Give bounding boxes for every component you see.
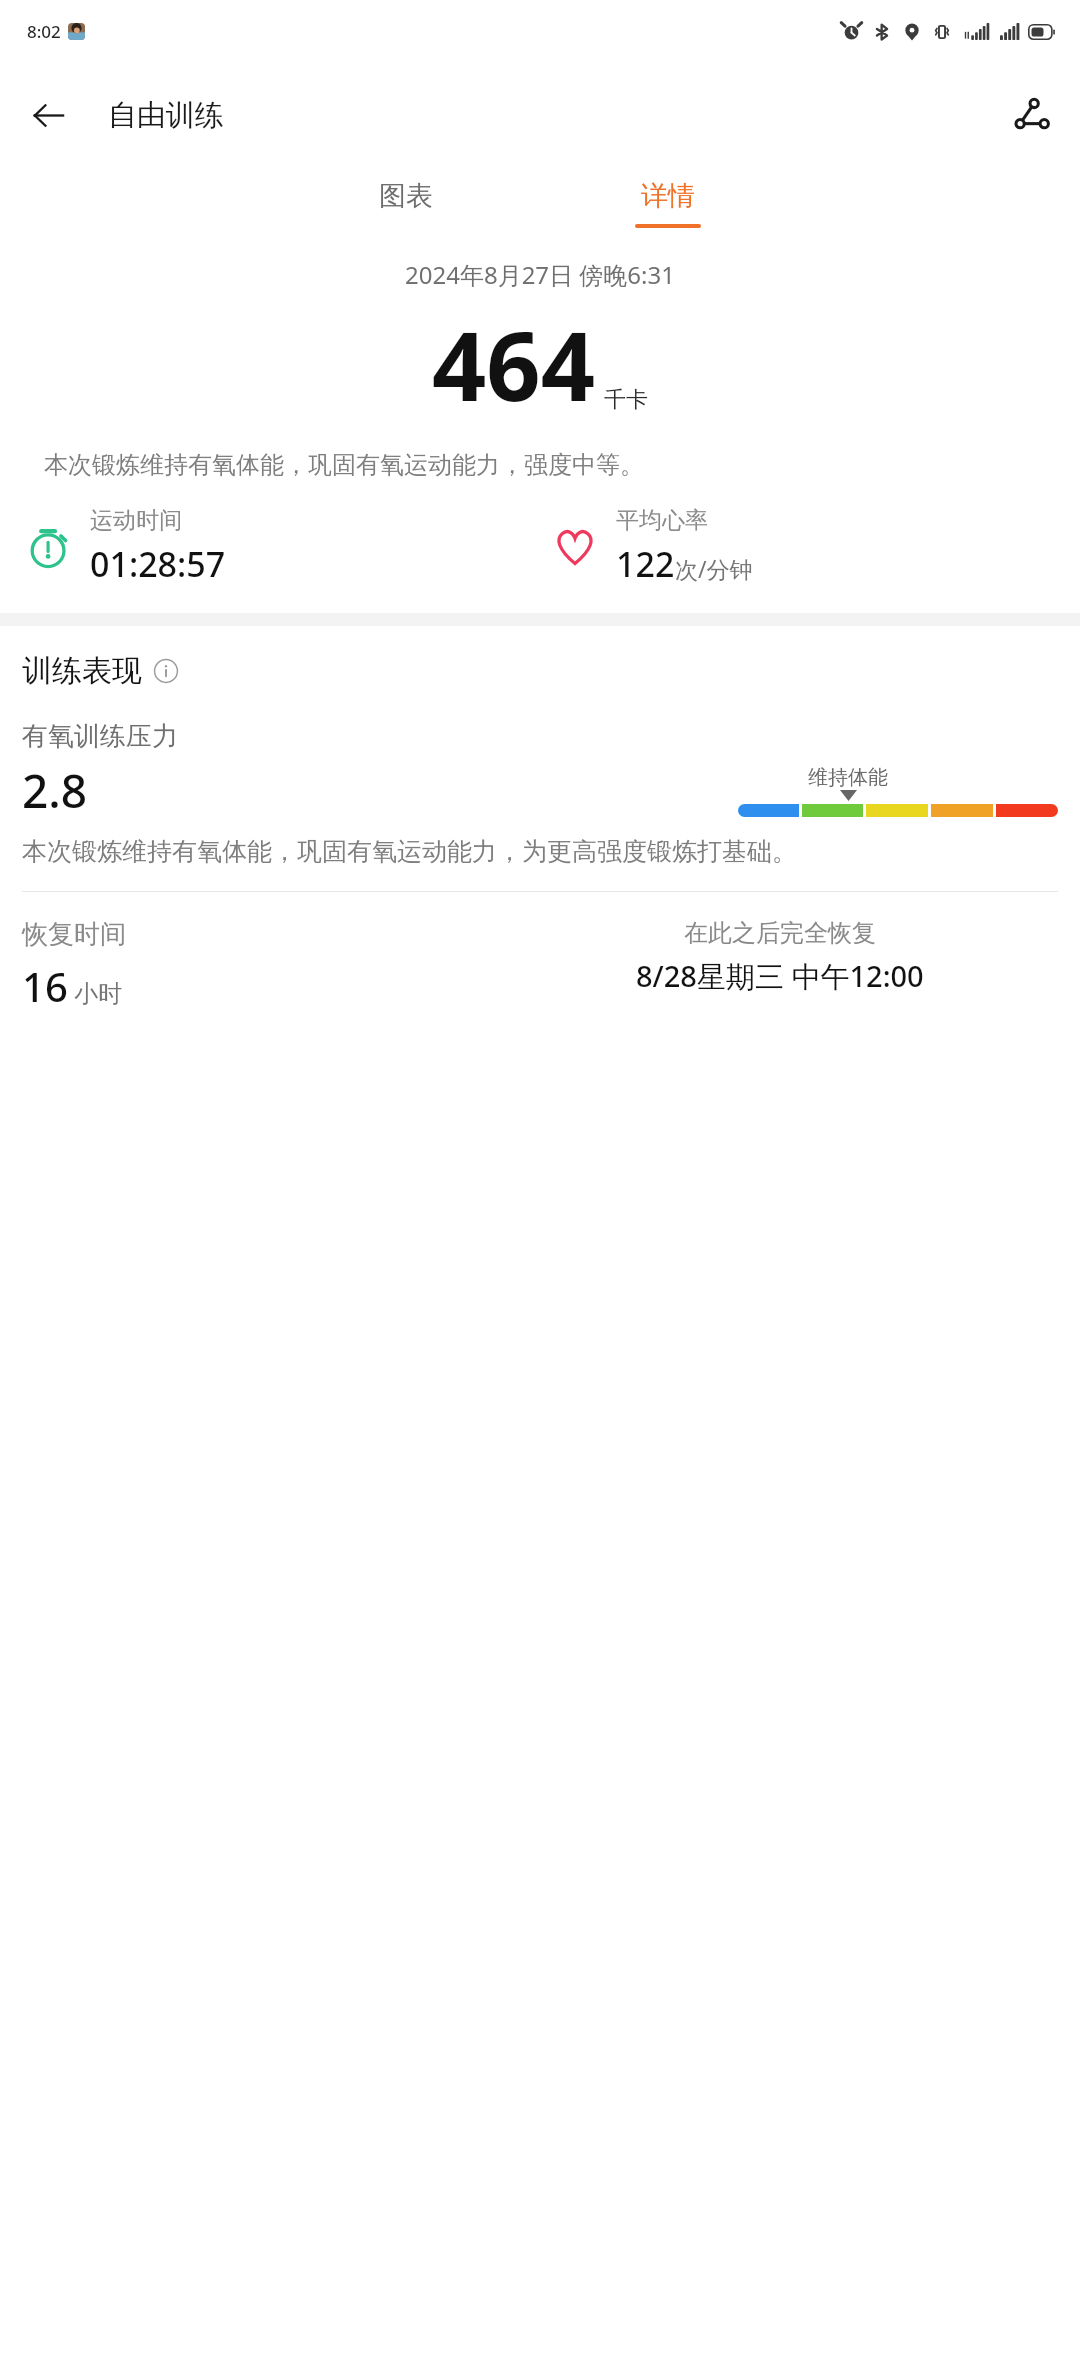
staticText: 维持体能 [808,765,888,790]
button[interactable]: Back [20,87,76,143]
staticText: 8:02 [27,20,61,43]
staticText: 本次锻炼维持有氧体能，巩固有氧运动能力，为更高强度锻炼打基础。 [22,836,1052,867]
staticText: 122 [616,541,675,587]
button[interactable]: 运动时间 [22,506,226,587]
staticText: 恢复时间 [22,918,126,951]
button[interactable]: Share [1004,87,1060,143]
button[interactable]: 训练表现 [22,652,1080,690]
staticText: 详情 [641,179,695,213]
staticText: 次/分钟 [675,553,753,584]
staticText: 小时 [74,979,122,1009]
staticText: 464 [432,299,596,428]
button[interactable]: 详情 [617,167,719,240]
staticText: 2024年8月27日 傍晚6:31 [405,258,675,291]
staticText: 有氧训练压力 [22,720,178,753]
staticText: 16 [22,959,68,1013]
staticText: 01:28:57 [90,541,226,587]
button[interactable]: 平均心率 [548,506,753,587]
other: Info [153,658,179,684]
staticText: 千卡 [604,386,648,414]
staticText: 在此之后完全恢复 [684,918,876,948]
staticText: 8/28星期三 中午12:00 [636,956,924,996]
staticText: 图表 [379,179,433,213]
staticText: 平均心率 [616,506,708,535]
button[interactable]: 图表 [361,167,451,240]
staticText: 运动时间 [90,506,182,535]
staticText: 训练表现 [22,652,142,690]
staticText: 自由训练 [108,97,224,134]
staticText: 2.8 [22,759,88,822]
staticText: 本次锻炼维持有氧体能，巩固有氧运动能力，强度中等。 [44,450,1036,480]
